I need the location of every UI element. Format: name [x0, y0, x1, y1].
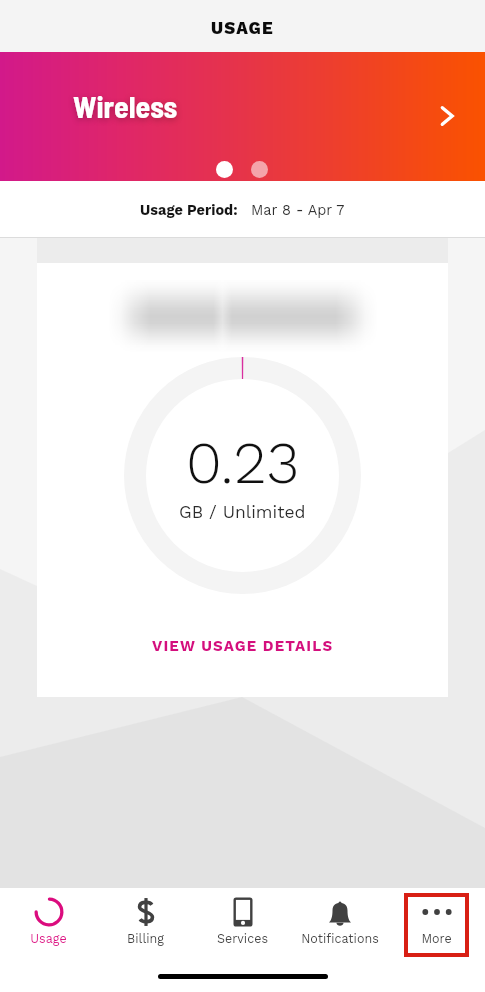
staticText: Mar 8 - Apr 7 — [251, 202, 345, 219]
staticText: Usage — [30, 931, 67, 946]
staticText: VIEW USAGE DETAILS — [152, 637, 334, 655]
other: Next — [434, 103, 460, 129]
staticText: Usage Period: — [140, 202, 238, 219]
button[interactable]: Billing — [113, 893, 178, 957]
button[interactable]: Notifications — [307, 893, 372, 957]
staticText: 0.23 — [186, 428, 299, 497]
button[interactable]: More — [404, 893, 469, 957]
button[interactable]: Services — [210, 893, 275, 957]
staticText: GB / Unlimited — [179, 502, 306, 523]
staticText: Services — [217, 931, 268, 946]
button[interactable]: Usage — [16, 893, 81, 957]
button[interactable]: Wireless — [0, 52, 485, 181]
staticText: Wireless — [73, 88, 178, 124]
staticText: More — [421, 931, 452, 946]
button[interactable]: VIEW USAGE DETAILS — [134, 628, 352, 664]
other: More — [422, 897, 452, 927]
staticText: Billing — [127, 931, 164, 946]
staticText: Notifications — [301, 931, 379, 946]
staticText: USAGE — [211, 18, 274, 38]
